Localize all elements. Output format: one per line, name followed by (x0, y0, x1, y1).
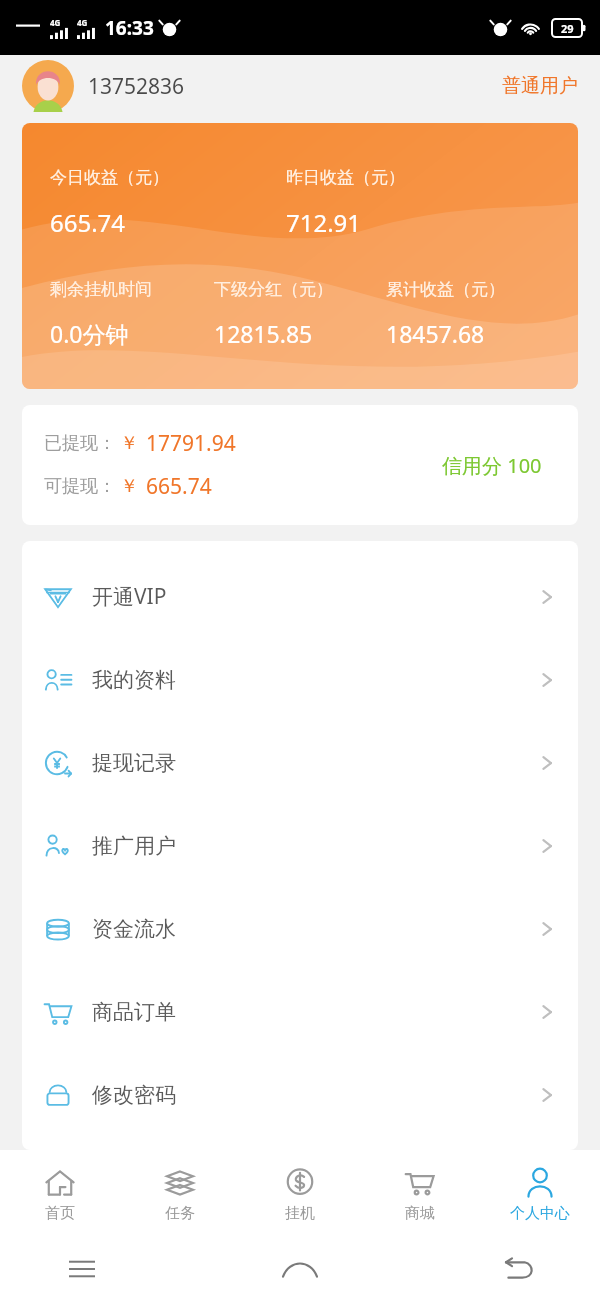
button[interactable]: 我的资料 (22, 638, 578, 721)
button[interactable]: 提现记录 (22, 721, 578, 804)
staticText: 商城 (405, 1204, 435, 1223)
button[interactable]: Home (274, 1243, 326, 1295)
staticText: 已提现： (44, 432, 116, 455)
staticText: 信用分 100 (442, 452, 542, 479)
button[interactable]: Recent apps (56, 1243, 108, 1295)
staticText: 17791.94 (146, 429, 236, 458)
staticText: 665.74 (146, 472, 212, 501)
staticText: 开通VIP (92, 582, 167, 611)
staticText: 4G (50, 17, 61, 28)
staticText: 665.74 (50, 206, 126, 239)
staticText: 首页 (45, 1204, 75, 1223)
button[interactable]: 已提现： (22, 405, 578, 525)
button[interactable]: 修改密码 (22, 1053, 578, 1136)
staticText: 修改密码 (92, 1082, 176, 1108)
staticText: 累计收益（元） (386, 279, 505, 300)
staticText: 任务 (165, 1204, 195, 1223)
button[interactable]: 个人中心 (480, 1150, 600, 1238)
staticText: 资金流水 (92, 916, 176, 942)
staticText: 712.91 (286, 206, 362, 239)
staticText: 推广用户 (92, 833, 176, 859)
staticText: 提现记录 (92, 750, 176, 776)
staticText: 4G (77, 17, 88, 28)
button[interactable]: 推广用户 (22, 804, 578, 887)
button[interactable]: 资金流水 (22, 887, 578, 970)
staticText: 29 (561, 21, 574, 36)
staticText: 下级分红（元） (214, 279, 333, 300)
button[interactable]: 首页 (0, 1150, 120, 1238)
staticText: 挂机 (285, 1204, 315, 1223)
staticText: 16:33 (105, 15, 154, 41)
staticText: 昨日收益（元） (286, 167, 405, 188)
button[interactable]: 任务 (120, 1150, 240, 1238)
staticText: 商品订单 (92, 999, 176, 1025)
staticText: 剩余挂机时间 (50, 279, 152, 300)
staticText: 普通用户 (502, 74, 578, 98)
button[interactable]: Back (492, 1243, 544, 1295)
button[interactable]: 普通用户 (502, 74, 578, 98)
button[interactable]: 商品订单 (22, 970, 578, 1053)
staticText: ￥ (120, 475, 138, 498)
button[interactable]: 开通VIP (22, 555, 578, 638)
staticText: 今日收益（元） (50, 167, 169, 188)
staticText: 个人中心 (510, 1204, 570, 1223)
staticText: 18457.68 (386, 318, 485, 349)
staticText: 我的资料 (92, 667, 176, 693)
button[interactable]: 挂机 (240, 1150, 360, 1238)
staticText: 可提现： (44, 475, 116, 498)
staticText: ￥ (120, 432, 138, 455)
staticText: 13752836 (88, 72, 185, 101)
button[interactable]: 商城 (360, 1150, 480, 1238)
staticText: 0.0分钟 (50, 318, 129, 349)
staticText: 12815.85 (214, 318, 313, 349)
